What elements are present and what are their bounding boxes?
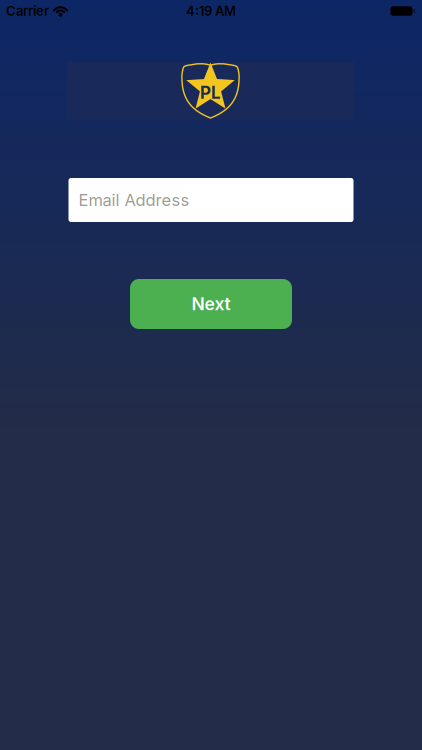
button[interactable]: Next [130,279,292,329]
staticText: 4:19 AM [186,3,236,19]
staticText: Email Address [78,190,189,210]
textField[interactable]: Email Address [78,190,353,210]
staticText: Next [191,293,230,315]
staticText: PL [200,82,221,103]
staticText: Carrier [6,3,49,19]
